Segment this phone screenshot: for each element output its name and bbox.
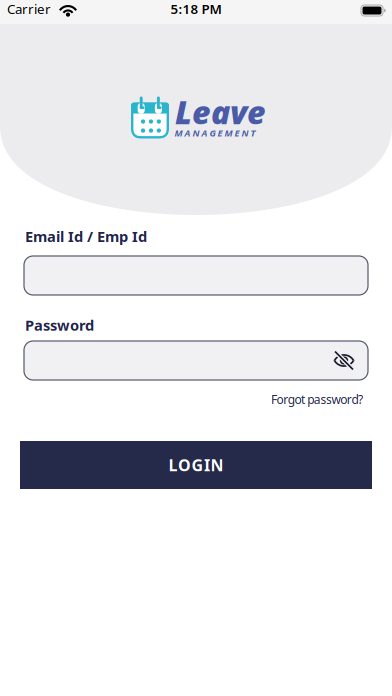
staticText: Password — [25, 315, 94, 335]
staticText: Carrier — [7, 0, 51, 18]
staticText: M — [174, 127, 182, 139]
staticText: Email Id / Emp Id — [25, 226, 147, 246]
staticText: N — [192, 127, 199, 139]
staticText: 5:18 PM — [170, 0, 221, 18]
staticText: E — [217, 127, 222, 139]
staticText: Leave — [175, 90, 266, 133]
button[interactable] — [24, 256, 368, 295]
staticText: E — [234, 127, 239, 139]
staticText: Forgot password? — [271, 391, 363, 407]
staticText: M — [224, 127, 232, 139]
staticText: T — [250, 127, 255, 139]
staticText: LOGIN — [168, 454, 223, 476]
button[interactable] — [24, 341, 368, 380]
button[interactable]: LOGIN — [20, 441, 372, 489]
staticText: G — [209, 127, 215, 139]
staticText: A — [184, 127, 190, 139]
button[interactable]: Forgot password? — [271, 391, 363, 407]
staticText: A — [201, 127, 207, 139]
staticText: N — [241, 127, 248, 139]
